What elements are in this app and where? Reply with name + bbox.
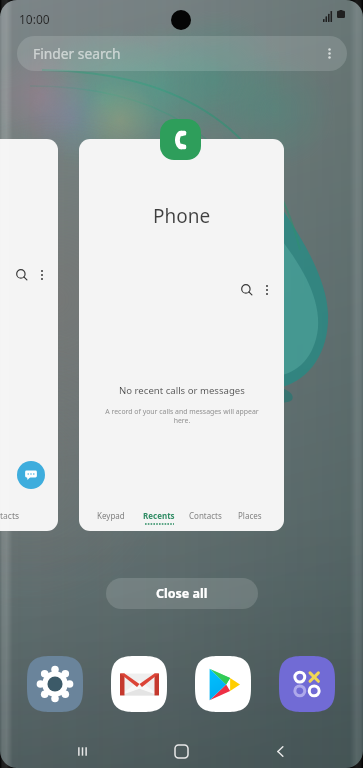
button[interactable]: Search — [15, 268, 29, 282]
button[interactable]: Game Launcher — [279, 656, 335, 712]
button[interactable]: Home — [157, 727, 205, 768]
button[interactable]: Search — [240, 283, 254, 297]
button[interactable]: Phone — [79, 139, 284, 531]
button[interactable]: Close all — [106, 578, 258, 609]
button[interactable]: Play Store — [195, 656, 251, 712]
staticText: Close all — [156, 585, 208, 602]
staticText: Keypad — [97, 510, 125, 521]
staticText: tacts — [0, 510, 20, 522]
button[interactable]: More options — [35, 268, 49, 282]
other: Phone app icon — [160, 119, 201, 160]
button[interactable]: Recents — [58, 727, 106, 768]
button[interactable]: Contacts — [189, 510, 222, 521]
button[interactable]: Keypad — [97, 510, 125, 521]
staticText: 10:00 — [19, 11, 50, 27]
button[interactable]: Settings — [27, 656, 83, 712]
staticText: No recent calls or messages — [119, 384, 245, 397]
button[interactable]: Gmail — [111, 656, 167, 712]
staticText: Finder search — [33, 44, 121, 63]
staticText: A record of your calls and messages will… — [97, 407, 267, 425]
staticText: Contacts — [189, 510, 222, 521]
button[interactable]: Recents — [143, 510, 175, 525]
staticText: Phone — [153, 203, 211, 229]
staticText: Recents — [143, 510, 175, 521]
button[interactable]: More options — [260, 283, 274, 297]
button[interactable]: Back — [256, 727, 304, 768]
staticText: Places — [238, 510, 262, 521]
button[interactable]: Search — [0, 139, 58, 531]
button[interactable]: Finder search — [17, 36, 347, 71]
button[interactable]: More options — [323, 47, 336, 60]
button[interactable]: Places — [238, 510, 262, 521]
